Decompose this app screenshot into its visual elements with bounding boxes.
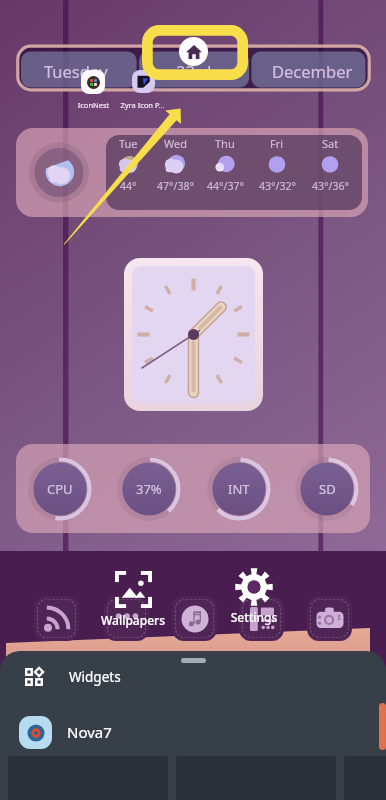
- staticText: Widgets: [69, 668, 121, 686]
- button[interactable]: Analog clock: [124, 258, 263, 411]
- button[interactable]: Nova7: [0, 708, 386, 756]
- staticText: Fri: [270, 136, 284, 151]
- button[interactable]: Internal: [207, 457, 271, 521]
- staticText: Wed: [164, 136, 187, 151]
- staticText: Wallpapers: [97, 612, 169, 628]
- button[interactable]: Home: [179, 37, 208, 66]
- button[interactable]: IconNest: [63, 70, 124, 108]
- button[interactable]: Weather forecast: [16, 128, 368, 217]
- button[interactable]: CPU: [28, 457, 92, 521]
- staticText: Zyra Icon P...: [112, 100, 173, 110]
- button[interactable]: SD: [295, 457, 359, 521]
- staticText: 43°/36°: [312, 179, 349, 193]
- staticText: 44°: [120, 179, 137, 193]
- staticText: Thu: [215, 136, 235, 151]
- staticText: Tue: [119, 136, 138, 151]
- staticText: 37%: [136, 480, 162, 498]
- staticText: Nova7: [67, 722, 112, 742]
- staticText: 43°/32°: [259, 179, 296, 193]
- staticText: 44°/37°: [207, 179, 244, 193]
- staticText: Tuesday: [44, 60, 108, 82]
- staticText: SD: [319, 480, 336, 498]
- staticText: IconNest: [63, 100, 124, 110]
- button[interactable]: Widgets: [0, 655, 386, 699]
- button[interactable]: RSS reader: [34, 596, 79, 641]
- button[interactable]: RAM: [117, 457, 181, 521]
- staticText: Sat: [322, 136, 339, 151]
- button[interactable]: Music: [172, 596, 217, 641]
- staticText: Settings: [218, 609, 290, 625]
- staticText: CPU: [47, 480, 73, 498]
- button[interactable]: Wallpapers: [97, 571, 169, 629]
- button[interactable]: Settings: [218, 568, 290, 628]
- staticText: 23rd: [176, 60, 212, 82]
- button[interactable]: Date widget: [16, 45, 371, 91]
- button[interactable]: Wallpapers app: [104, 596, 149, 641]
- button[interactable]: Camera: [307, 596, 352, 641]
- button[interactable]: Settings app: [239, 596, 284, 641]
- button[interactable]: Zyra Icon P...: [112, 70, 173, 108]
- staticText: INT: [228, 480, 250, 498]
- staticText: 47°/38°: [157, 179, 194, 193]
- staticText: December: [272, 60, 353, 82]
- button[interactable]: CPU: [16, 444, 370, 533]
